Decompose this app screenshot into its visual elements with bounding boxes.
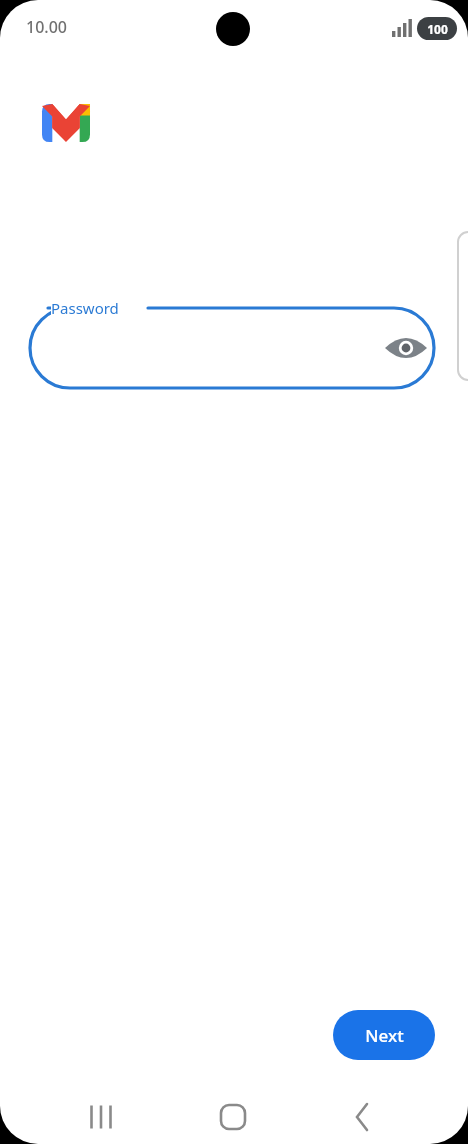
button[interactable]: Back (331, 1094, 393, 1140)
button[interactable] (30, 300, 434, 388)
button[interactable]: Home (202, 1094, 264, 1140)
staticText: 100 (427, 21, 448, 37)
staticText: 10.00 (26, 16, 67, 38)
staticText: Next (365, 1024, 404, 1047)
staticText: Password (51, 298, 119, 318)
button[interactable]: Next (333, 1010, 435, 1060)
other: Gmail (42, 104, 90, 142)
button[interactable]: Recents (70, 1094, 132, 1140)
